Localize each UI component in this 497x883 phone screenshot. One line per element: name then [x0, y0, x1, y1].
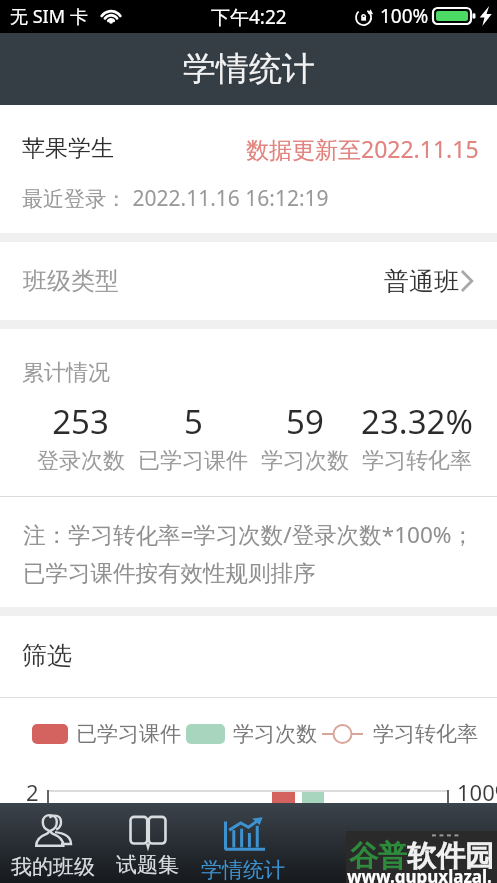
staticText: 无 SIM 卡 [10, 4, 88, 29]
button[interactable]: 学情统计 [195, 803, 290, 883]
staticText: 已学习课件按有效性规则排序 [23, 559, 316, 587]
staticText: 数据更新至2022.11.15 [246, 133, 479, 164]
staticText: 学习转化率 [362, 447, 472, 475]
staticText: 筛选 [22, 640, 72, 671]
staticText: 软件园 [407, 838, 494, 875]
staticText: 已学习课件 [76, 721, 181, 747]
staticText: 下午4:22 [211, 4, 287, 30]
staticText: www.gupuxlazal.com [347, 865, 497, 883]
staticText: 登录次数 [37, 447, 125, 475]
staticText: 59 [286, 399, 324, 444]
staticText: 5 [184, 399, 203, 444]
staticText: 100% [457, 777, 497, 804]
staticText: 普通班 [384, 266, 459, 297]
staticText: 学情统计 [201, 857, 285, 883]
staticText: 班级类型 [23, 266, 119, 296]
staticText: 试题集 [116, 852, 179, 878]
staticText: 100% [380, 3, 429, 29]
staticText: 学情统计 [183, 48, 315, 90]
staticText: 已学习课件 [138, 447, 248, 475]
staticText: 我的班级 [11, 854, 95, 880]
staticText: 苹果学生 [22, 134, 114, 163]
staticText: 23.32% [361, 399, 473, 444]
staticText: 253 [52, 399, 109, 444]
staticText: 累计情况 [22, 359, 110, 387]
button[interactable]: 班级类型 [0, 242, 497, 320]
staticText: 学习次数 [233, 721, 317, 747]
staticText: 最近登录： 2022.11.16 16:12:19 [22, 184, 329, 213]
staticText: 注：学习转化率=学习次数/登录次数*100%； [23, 519, 474, 550]
button[interactable]: 我的班级 [5, 803, 100, 883]
staticText: 2 [26, 777, 39, 804]
staticText: 学习次数 [261, 447, 349, 475]
button[interactable]: 试题集 [100, 803, 195, 883]
staticText: 谷普 [349, 838, 407, 875]
staticText: 学习转化率 [373, 721, 478, 747]
